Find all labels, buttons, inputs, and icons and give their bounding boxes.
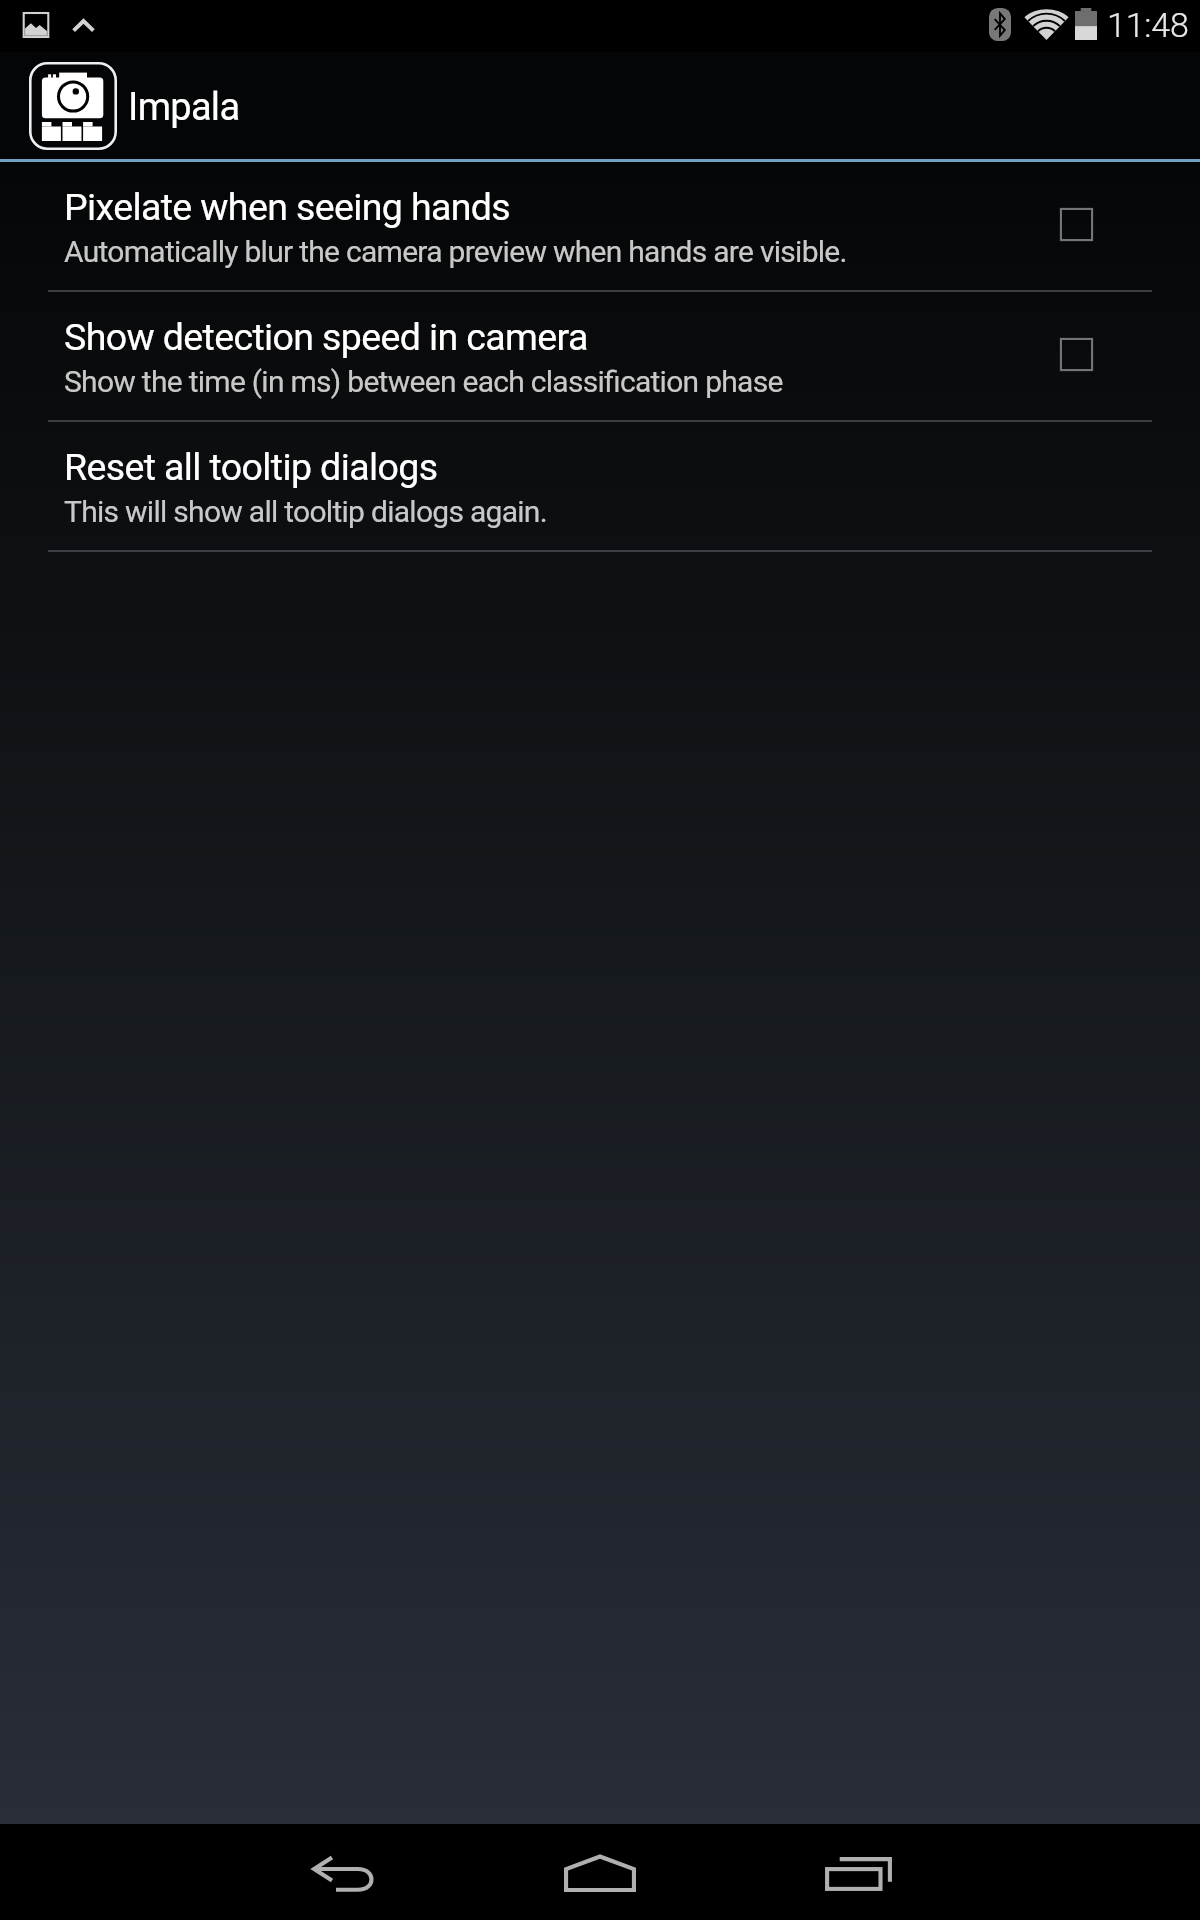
button[interactable]: Pixelate when seeing hands <box>0 162 1200 292</box>
button[interactable]: Reset all tooltip dialogs <box>0 422 1200 552</box>
staticText: Impala <box>128 85 240 130</box>
staticText: Pixelate when seeing hands <box>64 185 511 229</box>
button[interactable]: Back <box>272 1826 416 1918</box>
button[interactable]: Screenshot <box>21 10 51 40</box>
staticText: 11:48 <box>1107 5 1189 45</box>
staticText: Show detection speed in camera <box>64 315 588 359</box>
staticText: This will show all tooltip dialogs again… <box>64 494 547 529</box>
button[interactable]: Toggle Show detection speed in camera <box>1059 337 1094 372</box>
staticText: Reset all tooltip dialogs <box>64 445 438 489</box>
button[interactable]: Impala <box>0 52 1200 159</box>
button[interactable]: Show detection speed in camera <box>0 292 1200 422</box>
button[interactable]: Expand notifications <box>72 18 95 33</box>
button[interactable]: Toggle Pixelate when seeing hands <box>1059 207 1094 242</box>
button[interactable]: Recent apps <box>786 1826 930 1918</box>
staticText: Show the time (in ms) between each class… <box>64 364 783 399</box>
button[interactable]: Home <box>528 1826 672 1918</box>
staticText: Automatically blur the camera preview wh… <box>64 234 847 269</box>
